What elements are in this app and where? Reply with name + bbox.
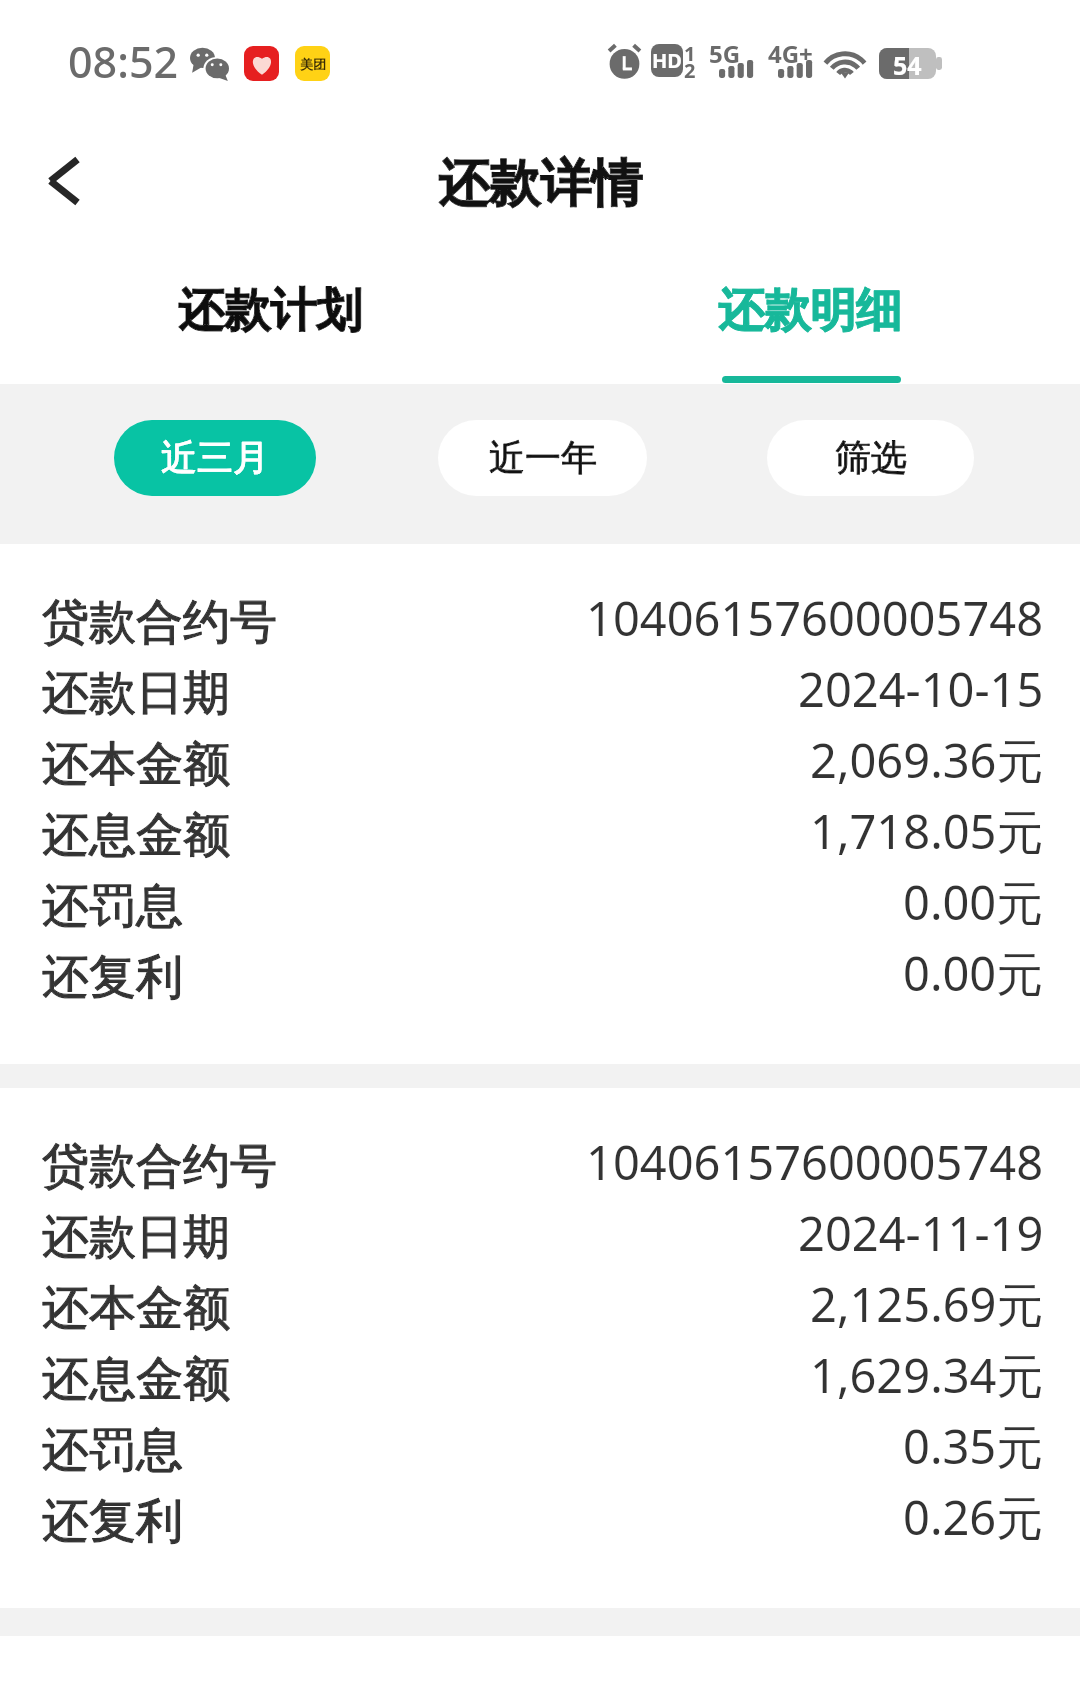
- staticText: 还款详情: [438, 152, 642, 216]
- staticText: 0.35元: [903, 1414, 1044, 1478]
- staticText: 还息金额: [42, 806, 230, 865]
- staticText: 还款日期: [42, 1208, 230, 1267]
- staticText: 贷款合约号: [42, 593, 277, 652]
- staticText: 0.00元: [903, 941, 1044, 1005]
- staticText: 2: [684, 57, 696, 84]
- staticText: 2024-11-19: [798, 1201, 1044, 1265]
- staticText: 近一年: [489, 435, 597, 480]
- staticText: 54: [893, 48, 922, 79]
- staticText: 筛选: [835, 435, 907, 480]
- staticText: 还复利: [42, 948, 183, 1007]
- staticText: 还罚息: [42, 1421, 183, 1480]
- staticText: 美团: [300, 56, 326, 72]
- staticText: 08:52: [68, 32, 179, 91]
- button[interactable]: Back: [0, 118, 128, 244]
- button[interactable]: 筛选: [767, 420, 974, 496]
- staticText: 还息金额: [42, 1350, 230, 1409]
- staticText: 还款计划: [178, 282, 362, 340]
- staticText: 还款日期: [42, 664, 230, 723]
- staticText: 还息金额: [42, 1350, 230, 1409]
- staticText: 近三月: [161, 435, 269, 480]
- staticText: 贷款合约号: [42, 1137, 277, 1196]
- staticText: 贷款合约号: [42, 1137, 277, 1196]
- staticText: 还复利: [42, 1492, 183, 1551]
- staticText: 还款明细: [718, 282, 902, 340]
- staticText: 1,718.05元: [810, 799, 1044, 863]
- staticText: 还复利: [42, 948, 183, 1007]
- staticText: 2024-10-15: [798, 657, 1044, 721]
- button[interactable]: 还款明细: [540, 244, 1080, 384]
- staticText: 还息金额: [42, 806, 230, 865]
- staticText: 5G: [709, 37, 741, 69]
- button[interactable]: 还款计划: [0, 244, 540, 384]
- staticText: HD: [652, 47, 682, 74]
- button[interactable]: 近一年: [438, 420, 647, 496]
- button[interactable]: 近三月: [114, 420, 316, 496]
- staticText: 还复利: [42, 1492, 183, 1551]
- staticText: 还款详情: [438, 152, 642, 216]
- staticText: 0.26元: [903, 1485, 1044, 1549]
- staticText: 贷款合约号: [42, 593, 277, 652]
- staticText: 还罚息: [42, 1421, 183, 1480]
- staticText: 还罚息: [42, 877, 183, 936]
- staticText: 10406157600005748: [586, 1130, 1044, 1194]
- staticText: 还款明细: [718, 282, 902, 340]
- staticText: 还本金额: [42, 735, 230, 794]
- staticText: 1,629.34元: [810, 1343, 1044, 1407]
- staticText: 10406157600005748: [586, 586, 1044, 650]
- staticText: 还本金额: [42, 1279, 230, 1338]
- staticText: 2,125.69元: [810, 1272, 1044, 1336]
- staticText: 还款日期: [42, 1208, 230, 1267]
- staticText: 筛选: [835, 435, 907, 480]
- staticText: 还本金额: [42, 1279, 230, 1338]
- staticText: 还本金额: [42, 735, 230, 794]
- staticText: 近三月: [161, 435, 269, 480]
- staticText: 还款日期: [42, 664, 230, 723]
- staticText: 还罚息: [42, 877, 183, 936]
- staticText: 1: [684, 40, 696, 67]
- staticText: 4G+: [768, 37, 813, 69]
- staticText: 2,069.36元: [810, 728, 1044, 792]
- staticText: 近一年: [489, 435, 597, 480]
- staticText: 0.00元: [903, 870, 1044, 934]
- staticText: 还款计划: [178, 282, 362, 340]
